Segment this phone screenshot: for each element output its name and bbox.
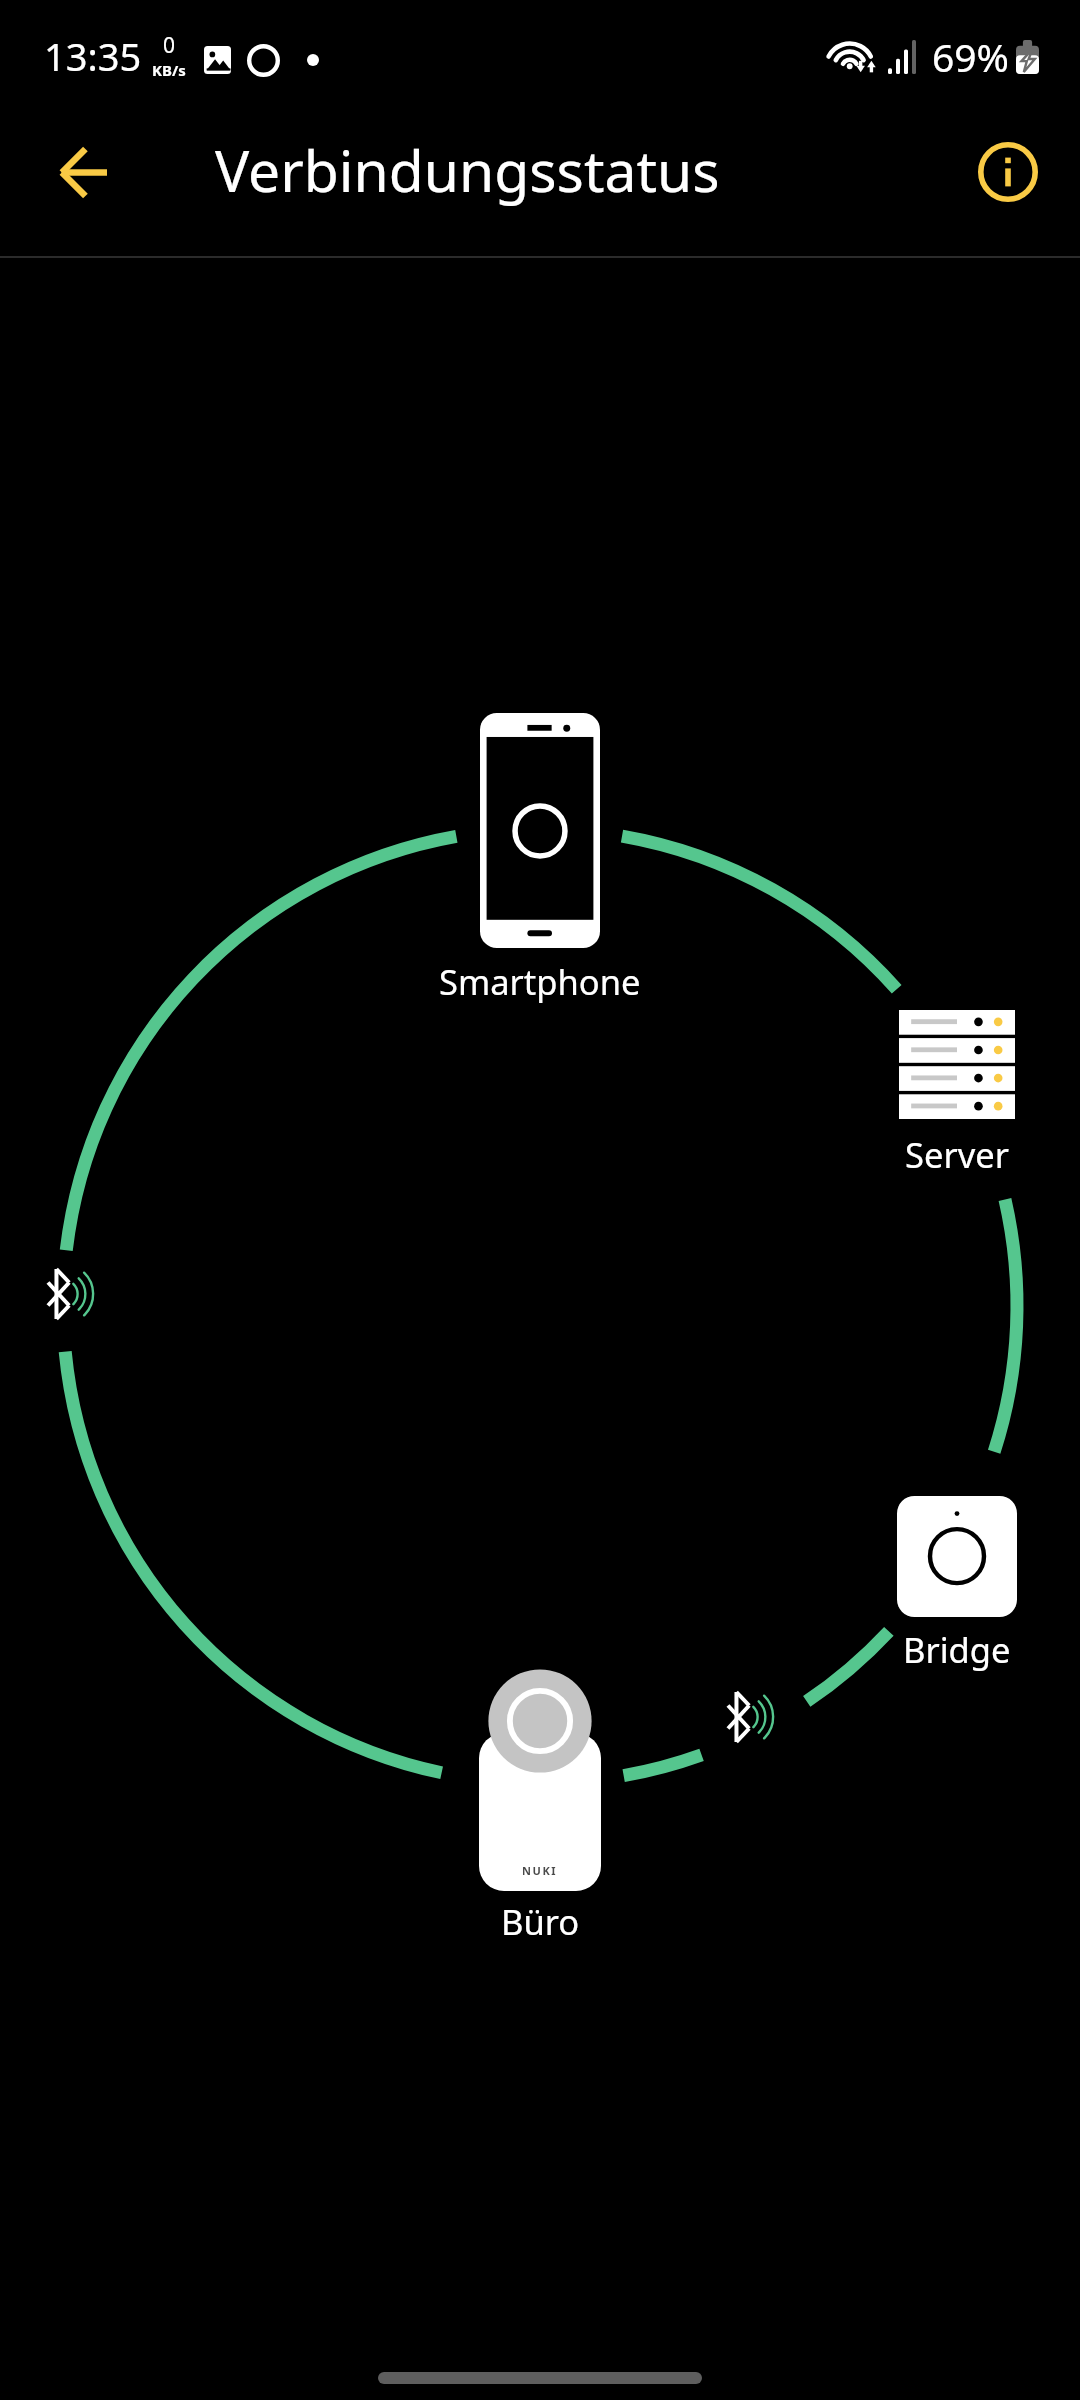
staticText: Bridge bbox=[903, 1626, 1011, 1673]
staticText: 69% bbox=[932, 30, 1010, 83]
staticText: 13:35 bbox=[44, 30, 142, 82]
staticText: NUKI bbox=[522, 1863, 558, 1878]
button[interactable]: Zurück bbox=[29, 117, 139, 227]
staticText: Büro bbox=[501, 1898, 580, 1945]
staticText: Verbindungsstatus bbox=[215, 131, 720, 209]
staticText: Smartphone bbox=[439, 958, 641, 1005]
staticText: Server bbox=[905, 1131, 1009, 1178]
staticText: 0 bbox=[163, 31, 176, 60]
button[interactable]: Information bbox=[958, 122, 1058, 222]
staticText: KB/s bbox=[152, 60, 186, 80]
